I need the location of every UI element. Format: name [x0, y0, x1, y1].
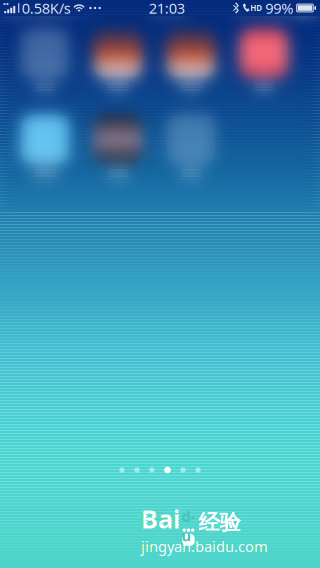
button[interactable]: App icon — [0, 0, 320, 568]
staticText: du — [181, 506, 195, 545]
button[interactable]: App icon — [0, 0, 320, 568]
button[interactable]: App icon — [0, 0, 320, 568]
staticText: 21:03 — [149, 0, 185, 18]
staticText: HD — [250, 3, 262, 13]
button[interactable]: App icon — [0, 0, 320, 568]
button[interactable]: App icon — [0, 0, 320, 568]
button[interactable]: App icon — [0, 0, 320, 568]
staticText: jingyan.baidu.com — [141, 536, 268, 556]
staticText: 99% — [265, 0, 293, 18]
staticText: 0.58K/s — [22, 0, 71, 18]
button[interactable]: App icon — [0, 0, 320, 568]
staticText: Bai — [141, 502, 181, 535]
staticText: 经验 — [198, 509, 240, 535]
